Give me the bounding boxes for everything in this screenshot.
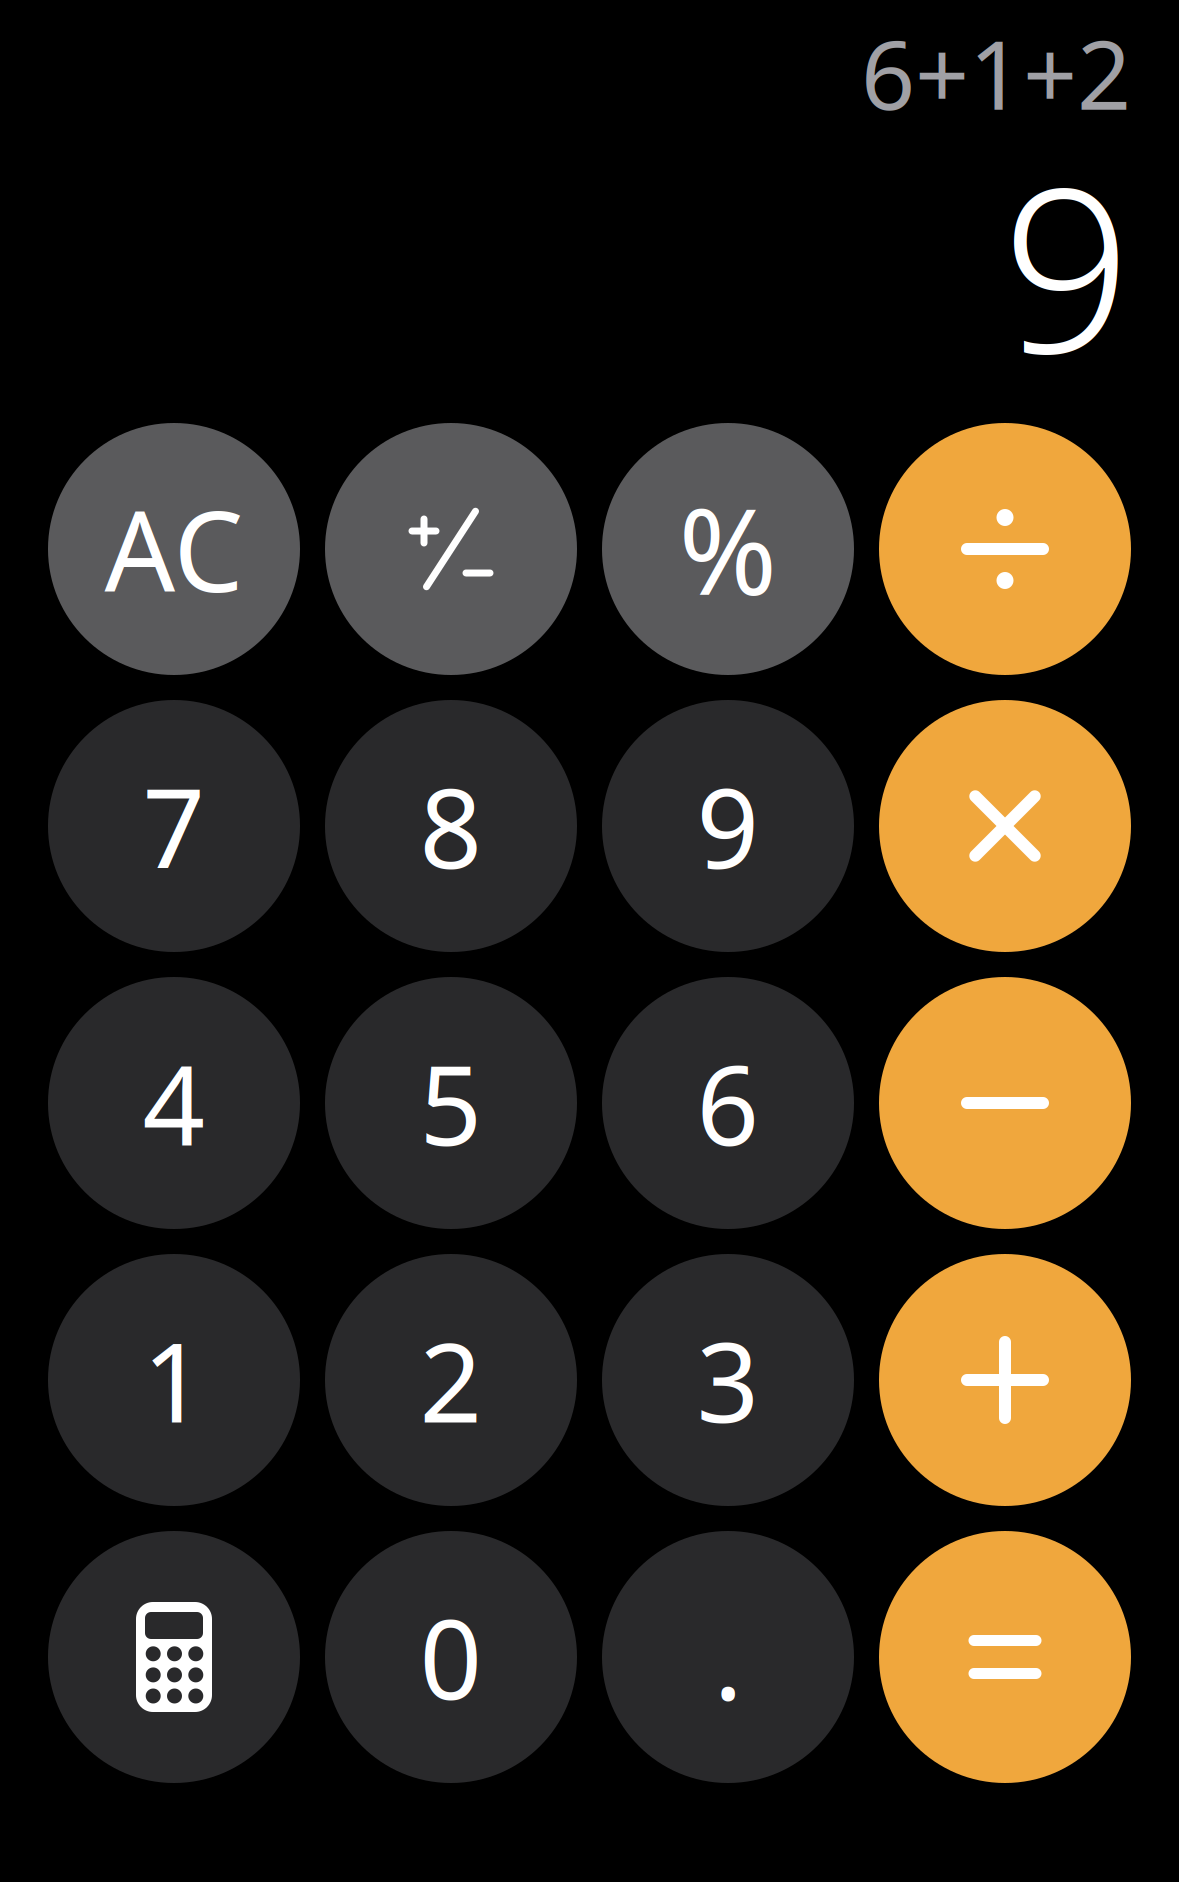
button[interactable]: 4: [48, 977, 300, 1229]
button[interactable]: 7: [48, 700, 300, 952]
button[interactable]: 2: [325, 1254, 577, 1506]
staticText: 0: [419, 1584, 482, 1730]
staticText: 5: [419, 1030, 482, 1176]
staticText: 7: [142, 753, 205, 899]
staticText: 1: [142, 1307, 205, 1453]
button[interactable]: 6: [602, 977, 854, 1229]
staticText: 6: [696, 1030, 759, 1176]
button[interactable]: 8: [325, 700, 577, 952]
staticText: 8: [419, 753, 482, 899]
staticText: %: [678, 470, 777, 628]
button[interactable]: Add: [879, 1254, 1131, 1506]
button[interactable]: %: [602, 423, 854, 675]
staticText: 9: [1002, 114, 1131, 415]
staticText: 9: [696, 753, 759, 899]
button[interactable]: 3: [602, 1254, 854, 1506]
staticText: 2: [419, 1307, 482, 1453]
button[interactable]: .: [602, 1531, 854, 1783]
button[interactable]: 5: [325, 977, 577, 1229]
staticText: .: [713, 1584, 742, 1730]
button[interactable]: Plus Minus: [325, 423, 577, 675]
button[interactable]: Multiply: [879, 700, 1131, 952]
staticText: 3: [696, 1307, 759, 1453]
button[interactable]: Subtract: [879, 977, 1131, 1229]
button[interactable]: Divide: [879, 423, 1131, 675]
button[interactable]: 9: [602, 700, 854, 952]
button[interactable]: 1: [48, 1254, 300, 1506]
button[interactable]: Equals: [879, 1531, 1131, 1783]
button[interactable]: Calculator: [48, 1531, 300, 1783]
button[interactable]: 0: [325, 1531, 577, 1783]
staticText: 6+1+2: [861, 10, 1131, 136]
staticText: AC: [104, 475, 243, 622]
staticText: 4: [142, 1030, 205, 1176]
button[interactable]: AC: [48, 423, 300, 675]
